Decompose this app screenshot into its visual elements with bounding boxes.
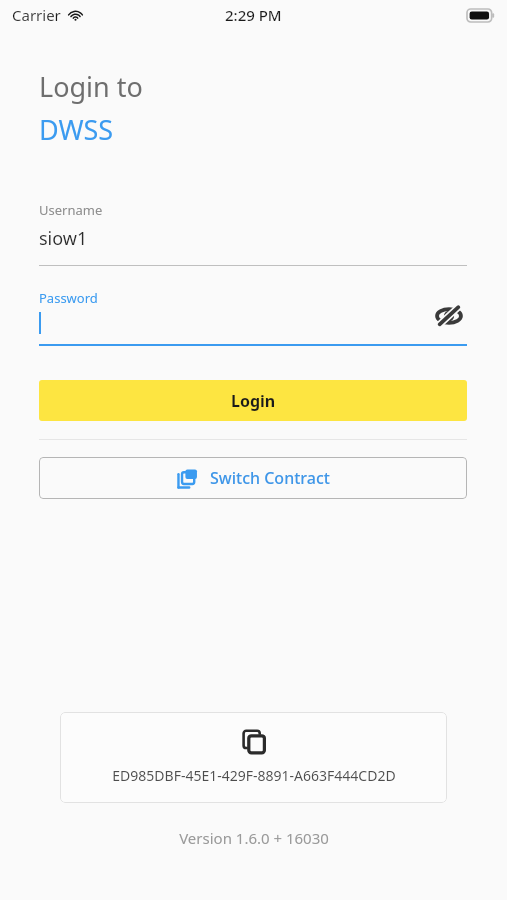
staticText: Password	[39, 289, 98, 307]
staticText: 2:29 PM	[225, 5, 282, 25]
staticText: Login	[231, 390, 276, 412]
staticText: Version 1.6.0 + 16030	[179, 828, 329, 848]
button[interactable]: Copy device id	[60, 712, 447, 803]
staticText: Carrier	[12, 5, 61, 25]
button[interactable]: Username	[39, 201, 467, 266]
button[interactable]: Password	[39, 289, 467, 346]
staticText: siow1	[39, 226, 88, 251]
staticText: Username	[39, 201, 103, 219]
button[interactable]: Login	[39, 380, 467, 421]
button[interactable]: Switch Contract	[39, 457, 467, 499]
staticText: Switch Contract	[210, 467, 330, 489]
staticText: DWSS	[39, 111, 114, 148]
staticText: ED985DBF-45E1-429F-8891-A663F444CD2D	[112, 766, 396, 785]
button[interactable]: Show password	[431, 298, 467, 334]
staticText: Login to	[39, 68, 143, 105]
